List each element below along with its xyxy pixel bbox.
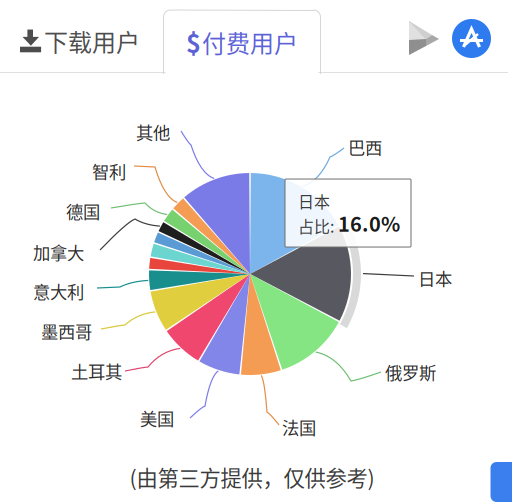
- staticText: 巴西: [348, 134, 382, 160]
- staticText: 法国: [282, 414, 316, 440]
- staticText: $: [186, 24, 201, 60]
- staticText: 土耳其: [71, 358, 122, 384]
- staticText: 日本: [298, 189, 330, 213]
- staticText: 其他: [136, 119, 170, 145]
- staticText: 俄罗斯: [385, 359, 436, 385]
- staticText: 墨西哥: [41, 318, 92, 344]
- staticText: 日本: [418, 265, 452, 291]
- staticText: 智利: [92, 158, 126, 184]
- staticText: 美国: [140, 405, 174, 431]
- button[interactable]: App Store: [452, 19, 491, 58]
- button[interactable]: $: [163, 10, 321, 74]
- staticText: (由第三方提供，仅供参考): [129, 462, 374, 492]
- staticText: 16.0%: [338, 208, 400, 237]
- staticText: 占比:: [298, 214, 334, 237]
- staticText: 德国: [66, 198, 100, 224]
- staticText: 意大利: [33, 278, 84, 304]
- staticText: 加拿大: [33, 239, 84, 265]
- button[interactable]: Google Play: [405, 18, 447, 60]
- button[interactable]: 下载用户: [14, 10, 164, 72]
- staticText: 付费用户: [202, 25, 298, 59]
- staticText: 下载用户: [44, 24, 140, 58]
